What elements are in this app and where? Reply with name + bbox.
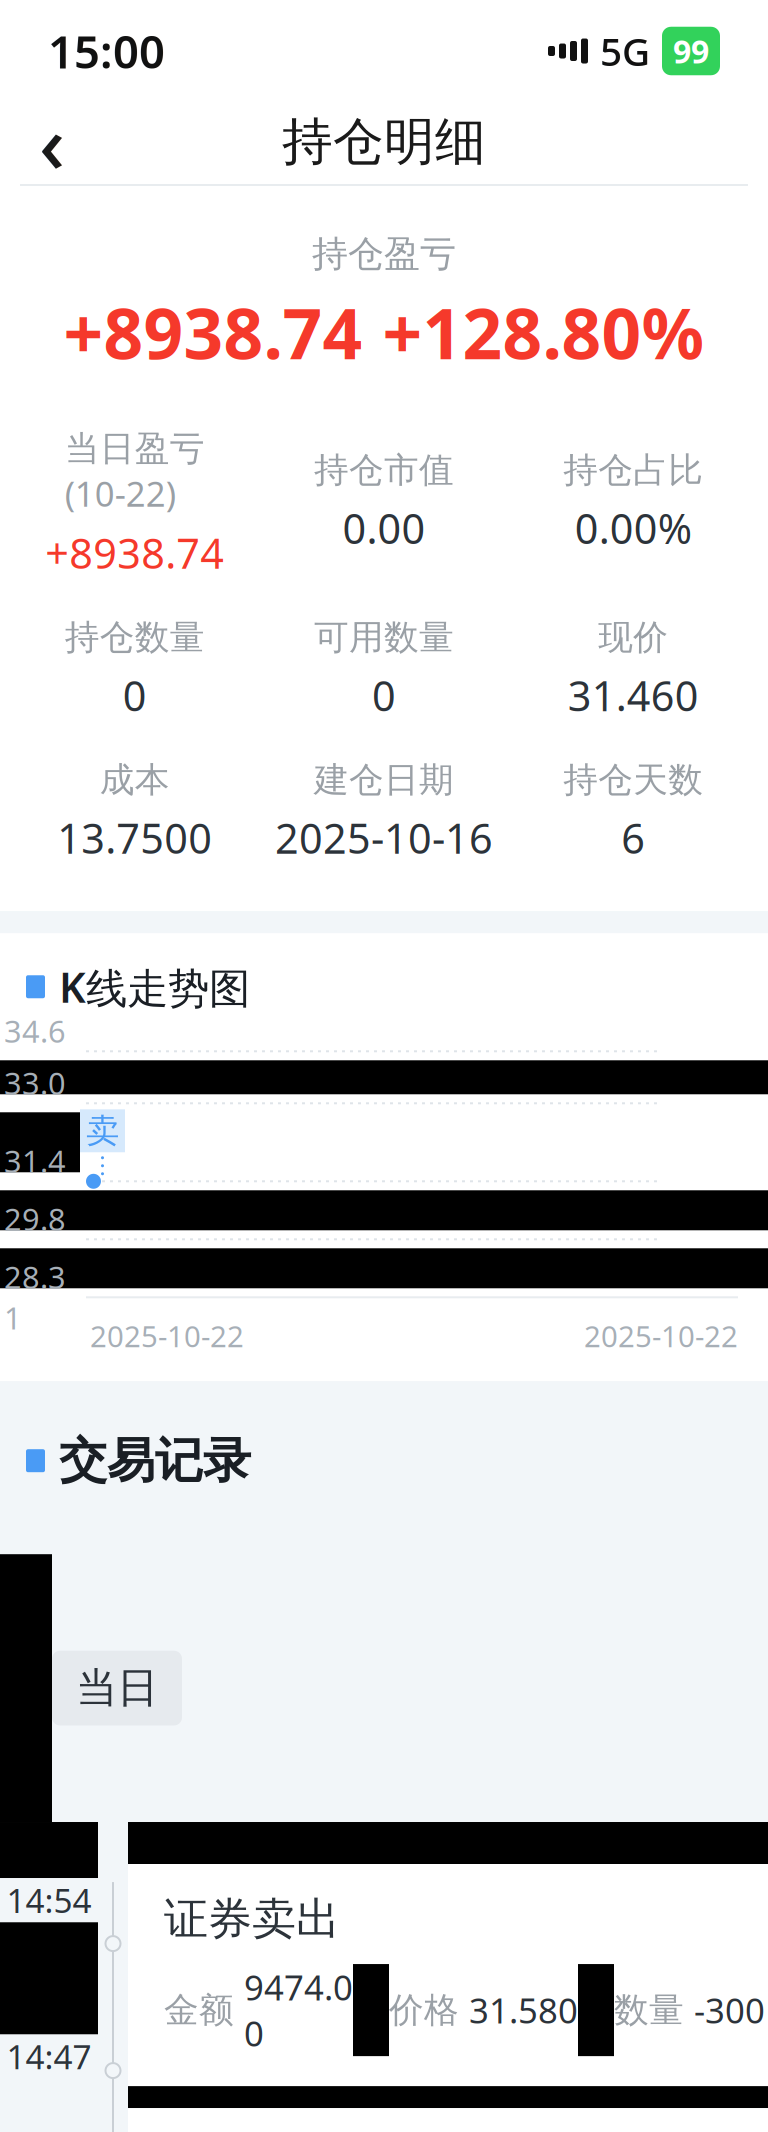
staticText: 14:54 (6, 1878, 91, 1922)
button[interactable]: 返回 (14, 104, 90, 180)
staticText: +8938.74 (63, 286, 362, 378)
staticText: 31.580 (469, 1987, 578, 2033)
staticText: 建仓日期 (314, 759, 454, 801)
staticText: 持仓天数 (563, 759, 703, 801)
staticText: 99 (673, 30, 709, 72)
button[interactable]: 证券卖出 (128, 2108, 768, 2132)
button[interactable]: 证券卖出 (128, 1864, 768, 2086)
staticText: 0 (123, 668, 147, 723)
staticText: 0.00% (575, 501, 692, 555)
staticText: 现价 (598, 616, 668, 659)
staticText: 14:47 (6, 2034, 91, 2079)
staticText: 6 (621, 810, 645, 865)
staticText: 持仓占比 (563, 449, 703, 492)
staticText: 5G (600, 25, 650, 77)
staticText: 价格 (389, 1989, 469, 2031)
staticText: 成本 (100, 759, 170, 801)
staticText: 9474.00 (244, 1964, 353, 2056)
staticText: 金额 (164, 1989, 244, 2031)
staticText: 持仓市值 (314, 449, 454, 492)
staticText: 可用数量 (314, 616, 454, 659)
staticText: 28.31 (4, 1257, 66, 1338)
staticText: 证券卖出 (164, 1892, 340, 1946)
staticText: 数量 (614, 1989, 694, 2031)
staticText: 31.460 (568, 668, 699, 723)
staticText: 13.7500 (57, 810, 212, 865)
staticText: 33.03 (4, 1063, 66, 1144)
staticText: 持仓盈亏 (312, 232, 456, 276)
staticText: ‹ (39, 89, 65, 195)
staticText: 持仓数量 (65, 616, 205, 659)
staticText: 交易记录 (59, 1431, 251, 1490)
staticText: 持仓明细 (282, 111, 486, 173)
staticText: 34.61 (4, 1011, 66, 1092)
staticText: +128.80% (382, 286, 704, 378)
staticText: 31.46 (4, 1141, 66, 1222)
staticText: 2025-10-22 (90, 1316, 244, 1355)
staticText: -300 (694, 1987, 765, 2033)
staticText: 当日盈亏 (10-22) (65, 424, 205, 516)
staticText: +8938.74 (45, 525, 224, 580)
staticText: 卖 (86, 1110, 119, 1151)
staticText: 15:00 (48, 21, 165, 81)
staticText: 2025-10-22 (584, 1316, 738, 1355)
staticText: 当日 (76, 1663, 158, 1713)
staticText: 0 (372, 668, 396, 723)
staticText: 0.00 (342, 501, 425, 555)
staticText: K线走势图 (59, 959, 250, 1014)
staticText: 29.89 (4, 1199, 66, 1280)
staticText: 2025-10-16 (275, 810, 493, 865)
